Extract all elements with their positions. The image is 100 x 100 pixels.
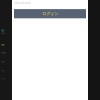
button[interactable]: ログイン [14,9,86,18]
staticText: ログイン [42,11,59,16]
other: Sidebar [0,0,12,100]
staticText: about:blank [14,1,31,5]
